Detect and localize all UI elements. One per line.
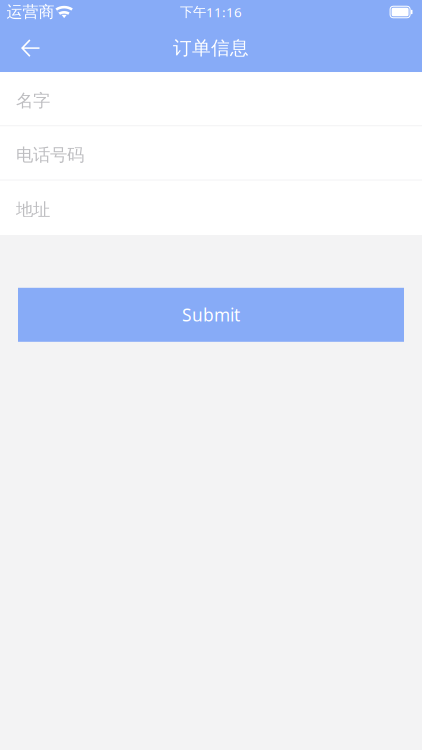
button[interactable]: 电话号码	[0, 126, 422, 180]
staticText: Submit	[182, 303, 240, 326]
staticText: 下午	[180, 4, 206, 20]
button[interactable]: 返回	[8, 26, 52, 70]
staticText: 电话号码	[16, 144, 84, 166]
button[interactable]: 名字	[0, 72, 422, 125]
staticText: 运营商	[6, 2, 54, 22]
button[interactable]: Submit	[18, 288, 404, 342]
button[interactable]: 地址	[0, 181, 422, 235]
staticText: 地址	[16, 199, 50, 220]
staticText: 11:16	[206, 3, 242, 21]
staticText: 订单信息	[173, 37, 249, 59]
staticText: 名字	[16, 90, 50, 111]
